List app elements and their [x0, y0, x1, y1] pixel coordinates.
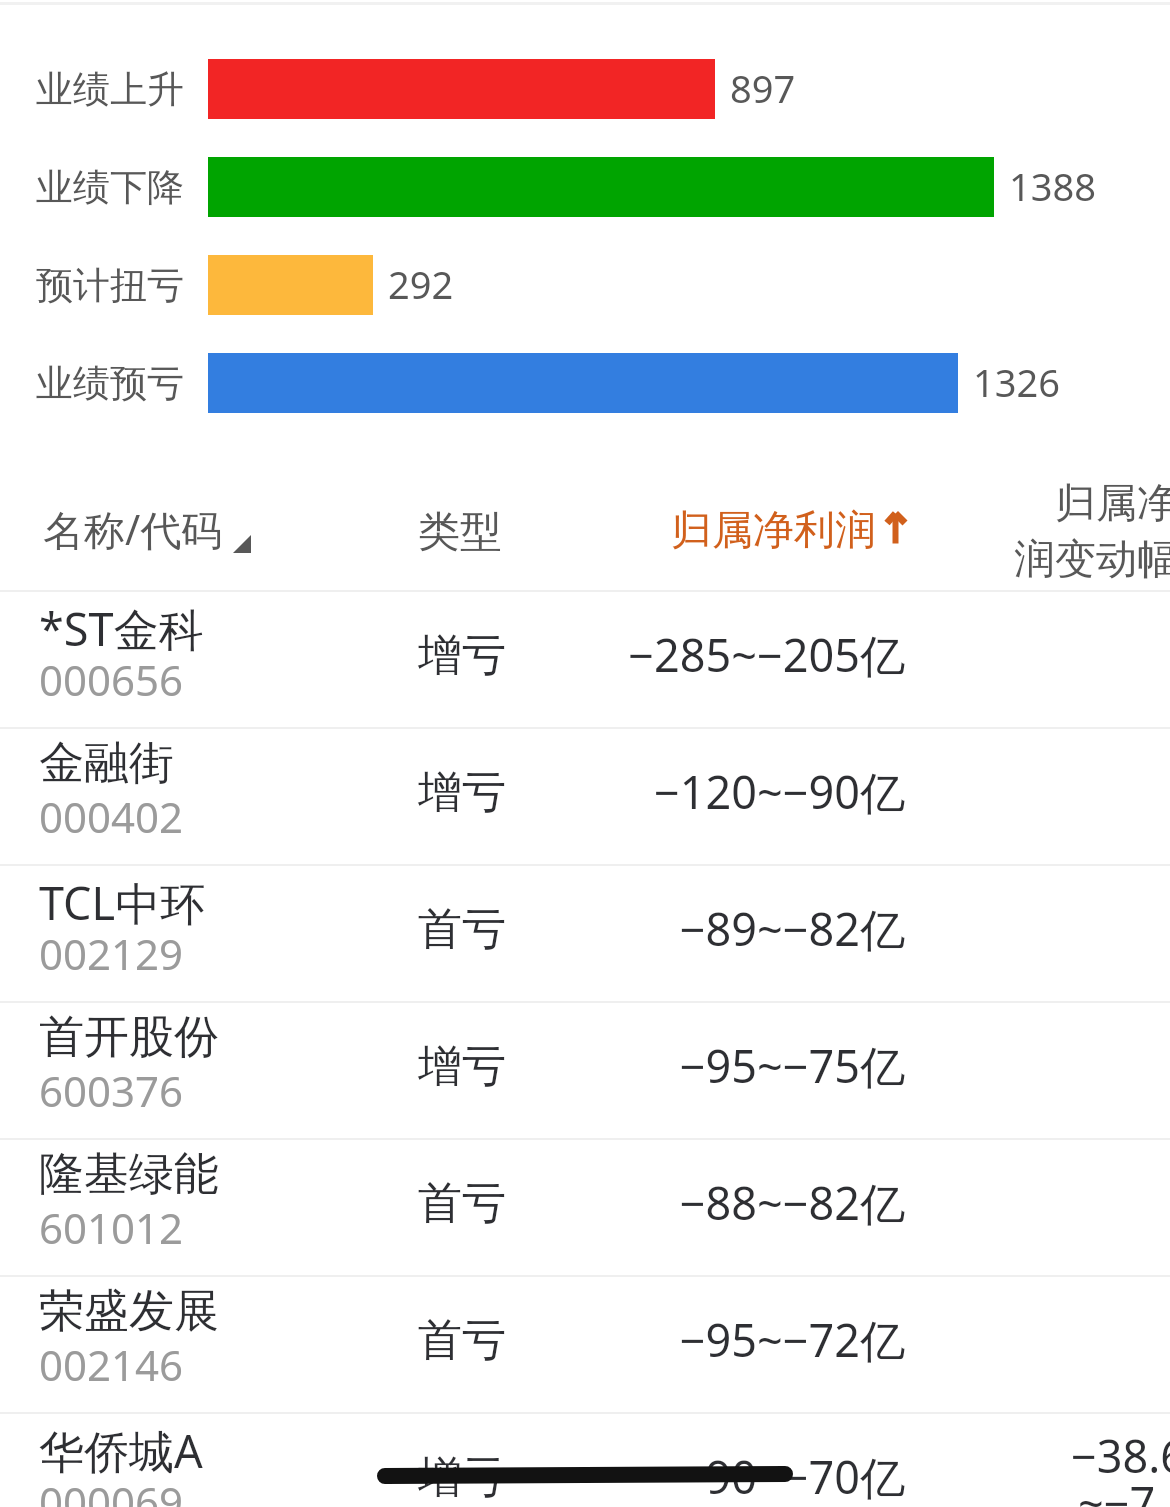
staticText: 600376 — [39, 1062, 184, 1119]
staticText: 292 — [388, 258, 454, 310]
button[interactable]: *ST金科 — [0, 590, 1170, 727]
staticText: −95~−75亿 — [505, 1035, 905, 1096]
staticText: 首亏 — [418, 1176, 506, 1231]
staticText: TCL中环 — [39, 872, 206, 933]
button[interactable]: 预计扭亏 — [0, 239, 1170, 331]
staticText: 增亏 — [418, 765, 506, 820]
staticText: 000402 — [39, 788, 184, 845]
staticText: 业绩下降 — [36, 164, 184, 211]
staticText: −285~−205亿 — [505, 624, 905, 685]
staticText: 归属净利润 — [671, 505, 876, 557]
staticText: 增亏 — [418, 628, 506, 683]
staticText: 隆基绿能 — [39, 1146, 219, 1203]
button[interactable]: 隆基绿能 — [0, 1138, 1170, 1275]
button[interactable]: 荣盛发展 — [0, 1275, 1170, 1412]
button[interactable]: TCL中环 — [0, 864, 1170, 1001]
staticText: ~−7.8 — [1078, 1472, 1170, 1507]
button[interactable]: 业绩预亏 — [0, 337, 1170, 429]
staticText: 1326 — [973, 356, 1060, 408]
button[interactable]: 类型 — [380, 470, 540, 580]
button[interactable]: 首开股份 — [0, 1001, 1170, 1138]
staticText: 预计扭亏 — [36, 262, 184, 309]
staticText: 1388 — [1009, 160, 1096, 212]
staticText: 002129 — [39, 925, 184, 982]
button[interactable]: 业绩上升 — [0, 43, 1170, 135]
staticText: 润变动幅度 — [1014, 534, 1170, 586]
staticText: 增亏 — [418, 1450, 506, 1505]
staticText: 000069 — [39, 1473, 184, 1507]
staticText: −88~−82亿 — [505, 1172, 905, 1233]
staticText: 首亏 — [418, 902, 506, 957]
staticText: 归属净利 — [1055, 478, 1170, 530]
staticText: 华侨城A — [39, 1420, 203, 1481]
staticText: 业绩预亏 — [36, 360, 184, 407]
staticText: 首开股份 — [39, 1009, 219, 1066]
staticText: 金融街 — [39, 735, 174, 792]
staticText: 名称/代码 — [43, 501, 223, 557]
staticText: 类型 — [418, 506, 502, 559]
staticText: 000656 — [39, 651, 184, 708]
staticText: 897 — [730, 62, 796, 114]
staticText: −89~−82亿 — [505, 898, 905, 959]
staticText: 荣盛发展 — [39, 1283, 219, 1340]
staticText: −38.6 — [1071, 1425, 1170, 1486]
staticText: −95~−72亿 — [505, 1309, 905, 1370]
staticText: 业绩上升 — [36, 66, 184, 113]
staticText: 增亏 — [418, 1039, 506, 1094]
staticText: 601012 — [39, 1199, 184, 1256]
button[interactable]: 归属净利 — [1000, 466, 1170, 584]
staticText: −90~−70亿 — [505, 1446, 905, 1507]
button[interactable]: 归属净利润 — [640, 470, 930, 580]
button[interactable]: 金融街 — [0, 727, 1170, 864]
staticText: 002146 — [39, 1336, 184, 1393]
staticText: *ST金科 — [39, 598, 204, 659]
staticText: −120~−90亿 — [505, 761, 905, 822]
button[interactable]: 名称/代码 — [20, 470, 270, 580]
staticText: 首亏 — [418, 1313, 506, 1368]
button[interactable]: 华侨城A — [0, 1412, 1170, 1507]
button[interactable]: 业绩下降 — [0, 141, 1170, 233]
